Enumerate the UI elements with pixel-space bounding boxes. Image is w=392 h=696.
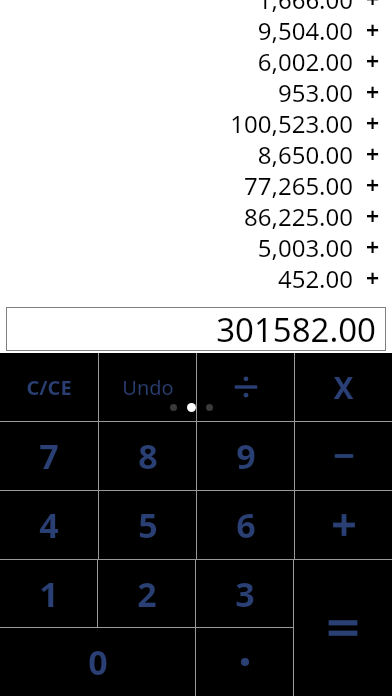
staticText: 5,003.00 [0,231,353,262]
staticText: 100,523.00 [0,107,353,138]
staticText: 6,002.00 [0,45,353,76]
button[interactable]: Plus [295,491,392,559]
button[interactable]: 9 [197,422,294,490]
staticText: 9,504.00 [0,14,353,45]
staticText: + [366,200,380,231]
button[interactable]: 0 [0,628,195,696]
staticText: C/CE [26,374,72,401]
staticText: 5 [138,502,158,548]
staticText: 0 [88,639,108,685]
button[interactable]: Divide [197,353,294,421]
staticText: + [366,107,380,138]
staticText: 1 [39,571,59,617]
button[interactable]: 6 [197,491,294,559]
staticText: 86,225.00 [0,200,353,231]
staticText: 2 [137,571,157,617]
staticText: + [366,14,380,45]
staticText: 3 [235,571,255,617]
staticText: 9 [236,433,256,479]
button[interactable]: 8 [99,422,196,490]
staticText: 77,265.00 [0,169,353,200]
button[interactable]: Equals [294,560,392,696]
button[interactable]: 7 [0,422,98,490]
staticText: + [366,76,380,107]
button[interactable]: Minus [295,422,392,490]
button[interactable]: 2 [98,560,195,627]
staticText: 953.00 [0,76,353,107]
staticText: 452.00 [0,262,353,290]
button[interactable]: C/CE key [0,353,98,421]
staticText: + [366,262,380,290]
button[interactable]: Decimal point [196,628,293,696]
staticText: 4 [39,502,59,548]
staticText: 6 [236,502,256,548]
staticText: + [366,231,380,262]
staticText: 8 [138,433,158,479]
staticText: Undo [122,374,174,401]
staticText: 1,666.00 [0,0,353,14]
staticText: + [366,169,380,200]
button[interactable]: 301582.00 [6,307,386,351]
button[interactable]: 1 [0,560,97,627]
staticText: + [366,138,380,169]
staticText: 301582.00 [216,307,376,351]
staticText: X [333,367,354,408]
button[interactable]: Multiply [295,353,392,421]
button[interactable]: 4 [0,491,98,559]
staticText: 7 [39,433,59,479]
staticText: + [366,45,380,76]
button[interactable]: 5 [99,491,196,559]
button[interactable]: Undo [99,353,196,421]
staticText: + [366,0,380,14]
staticText: 8,650.00 [0,138,353,169]
button[interactable]: 3 [196,560,293,627]
